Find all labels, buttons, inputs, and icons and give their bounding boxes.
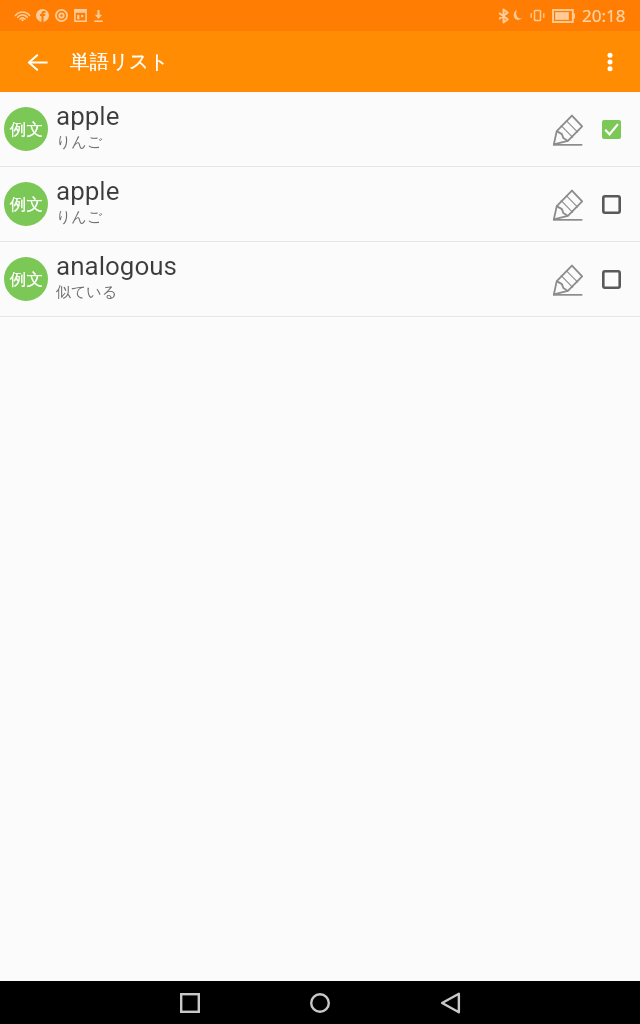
staticText: apple	[56, 101, 120, 131]
button[interactable]: Not selected	[589, 257, 633, 301]
button[interactable]: Back	[385, 981, 515, 1024]
staticText: 例文	[10, 269, 43, 290]
staticText: 似ている	[56, 283, 118, 302]
button[interactable]: Selected	[589, 107, 633, 151]
button[interactable]: Edit	[536, 179, 586, 229]
staticText: analogous	[56, 251, 177, 281]
button[interactable]: Not selected	[589, 182, 633, 226]
staticText: 例文	[10, 119, 43, 140]
button[interactable]: Edit	[536, 104, 586, 154]
staticText: 20:18	[582, 4, 626, 27]
staticText: 例文	[10, 194, 43, 215]
button[interactable]: 例文	[0, 167, 640, 241]
button[interactable]: Home	[255, 981, 385, 1024]
button[interactable]: Back	[14, 38, 62, 86]
staticText: りんご	[56, 208, 103, 227]
staticText: 単語リスト	[70, 49, 169, 74]
staticText: りんご	[56, 133, 103, 152]
button[interactable]: 例文	[0, 242, 640, 316]
staticText: apple	[56, 176, 120, 206]
button[interactable]: 例文	[0, 92, 640, 166]
button[interactable]: Recents	[125, 981, 255, 1024]
button[interactable]: More options	[588, 40, 632, 84]
button[interactable]: Edit	[536, 254, 586, 304]
